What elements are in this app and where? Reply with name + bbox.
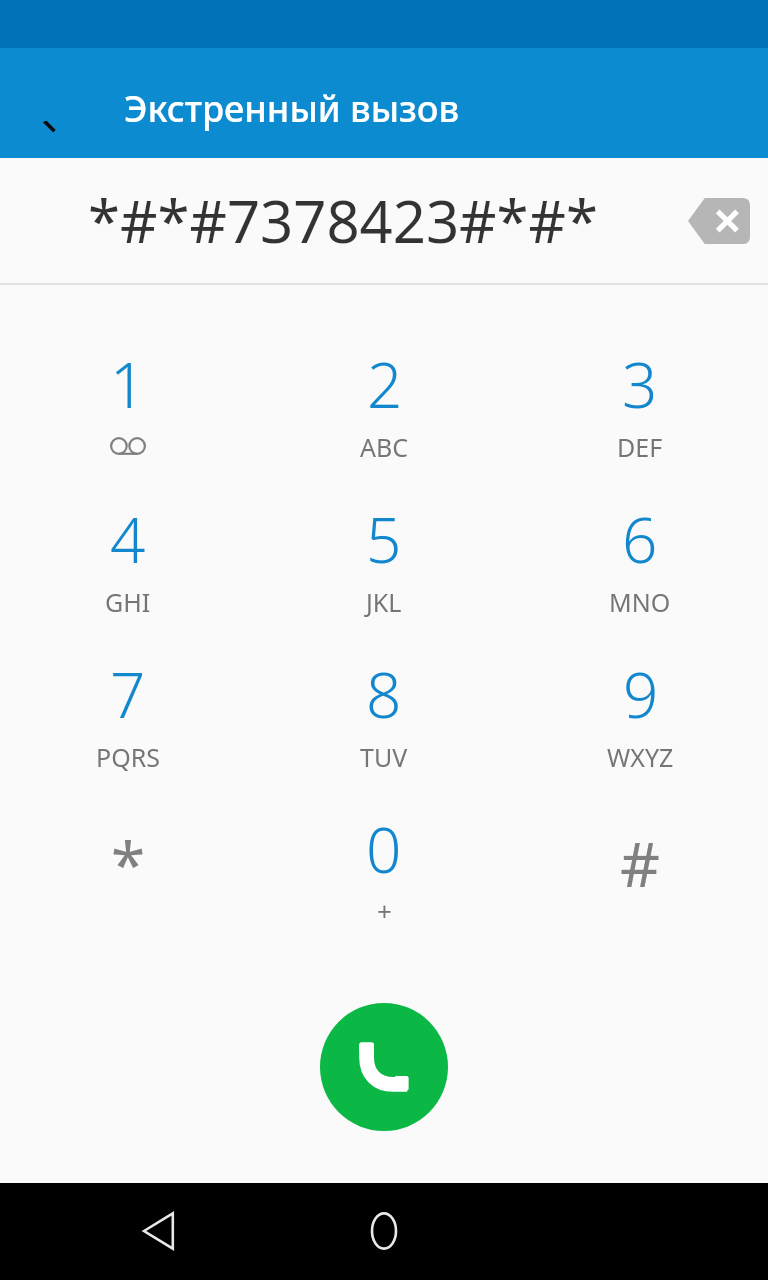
staticText: + [377,893,392,928]
button[interactable]: 7 [0,652,256,802]
button[interactable]: 4 [0,497,256,647]
staticText: Экстренный вызов [124,84,460,133]
staticText: 2 [367,342,403,426]
staticText: 9 [623,652,659,736]
staticText: DEF [617,430,663,464]
staticText: 5 [366,497,402,581]
staticText: MNO [609,585,671,619]
button[interactable]: # [512,807,768,957]
button[interactable]: 6 [512,497,768,647]
staticText: 6 [622,497,658,581]
staticText: WXYZ [607,740,674,774]
staticText: 1 [110,342,146,426]
button[interactable]: Назад [23,119,91,187]
button[interactable]: 5 [256,497,512,647]
button[interactable]: 0 [256,807,512,957]
button[interactable]: 1 [0,342,256,492]
button[interactable]: 2 [256,342,512,492]
button[interactable]: 3 [512,342,768,492]
button[interactable]: * [0,807,256,957]
button[interactable]: Назад [112,1183,208,1279]
staticText: ABC [360,430,409,464]
staticText: JKL [366,585,402,619]
staticText: 7 [110,652,146,736]
button[interactable]: Удалить [670,172,768,270]
staticText: 0 [366,807,402,891]
staticText: TUV [360,740,408,774]
staticText: 3 [622,342,658,426]
staticText: 4 [110,497,146,581]
button[interactable]: 8 [256,652,512,802]
staticText: # [620,821,661,905]
staticText: 8 [366,652,402,736]
button[interactable]: Позвонить [320,1003,448,1131]
button[interactable]: Главный экран [336,1183,432,1279]
staticText: * [111,821,146,905]
staticText: *#*#7378423#*#* [88,181,598,260]
staticText: PQRS [96,740,160,774]
staticText: GHI [105,585,151,619]
button[interactable]: 9 [512,652,768,802]
